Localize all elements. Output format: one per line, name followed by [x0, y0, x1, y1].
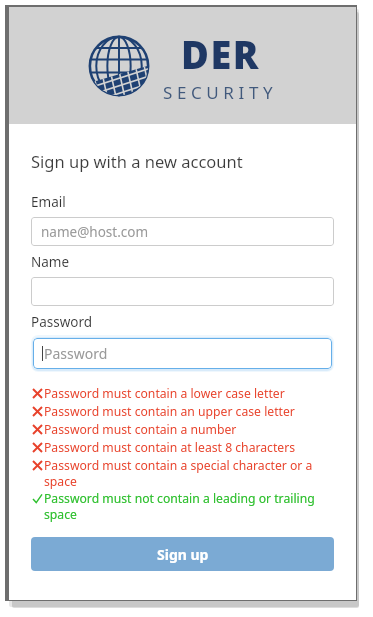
staticText: Password must contain an upper case lett… — [44, 403, 295, 420]
staticText: SECURITY — [163, 81, 278, 104]
staticText: Password must contain a special characte… — [44, 457, 334, 489]
button[interactable]: Sign up — [31, 537, 334, 571]
staticText: Sign up — [157, 545, 209, 564]
staticText: Sign up with a new account — [31, 150, 243, 172]
staticText: Password must contain a number — [44, 421, 237, 438]
button[interactable] — [31, 277, 334, 306]
staticText: Password — [31, 313, 93, 331]
button[interactable]: name@host.com — [31, 217, 334, 246]
staticText: Password must contain at least 8 charact… — [44, 439, 296, 456]
staticText: Password must contain a lower case lette… — [44, 385, 285, 402]
staticText: Password — [44, 344, 108, 363]
staticText: name@host.com — [41, 223, 149, 241]
staticText: DER — [181, 28, 260, 80]
staticText: Email — [31, 193, 66, 211]
button[interactable]: Password — [33, 338, 332, 369]
staticText: Password must not contain a leading or t… — [44, 490, 334, 522]
staticText: Name — [31, 253, 70, 271]
